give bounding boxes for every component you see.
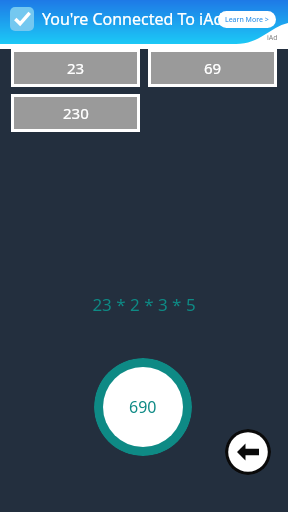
staticText: 69 <box>204 58 222 78</box>
button[interactable]: 230 <box>14 97 137 129</box>
staticText: You're Connected To iAd <box>42 8 224 30</box>
staticText: 23 * 2 * 3 * 5 <box>92 293 196 316</box>
staticText: iAd <box>267 33 278 43</box>
staticText: 23 <box>67 58 85 78</box>
button[interactable]: 69 <box>151 52 274 84</box>
staticText: 230 <box>63 103 89 123</box>
button[interactable]: 690 <box>94 358 192 456</box>
button[interactable]: Back <box>225 429 271 475</box>
staticText: Learn More > <box>225 15 269 25</box>
button[interactable]: 23 <box>14 52 137 84</box>
button[interactable]: Connected <box>10 7 34 31</box>
button[interactable]: Learn More > <box>225 11 269 28</box>
staticText: 690 <box>129 396 157 418</box>
